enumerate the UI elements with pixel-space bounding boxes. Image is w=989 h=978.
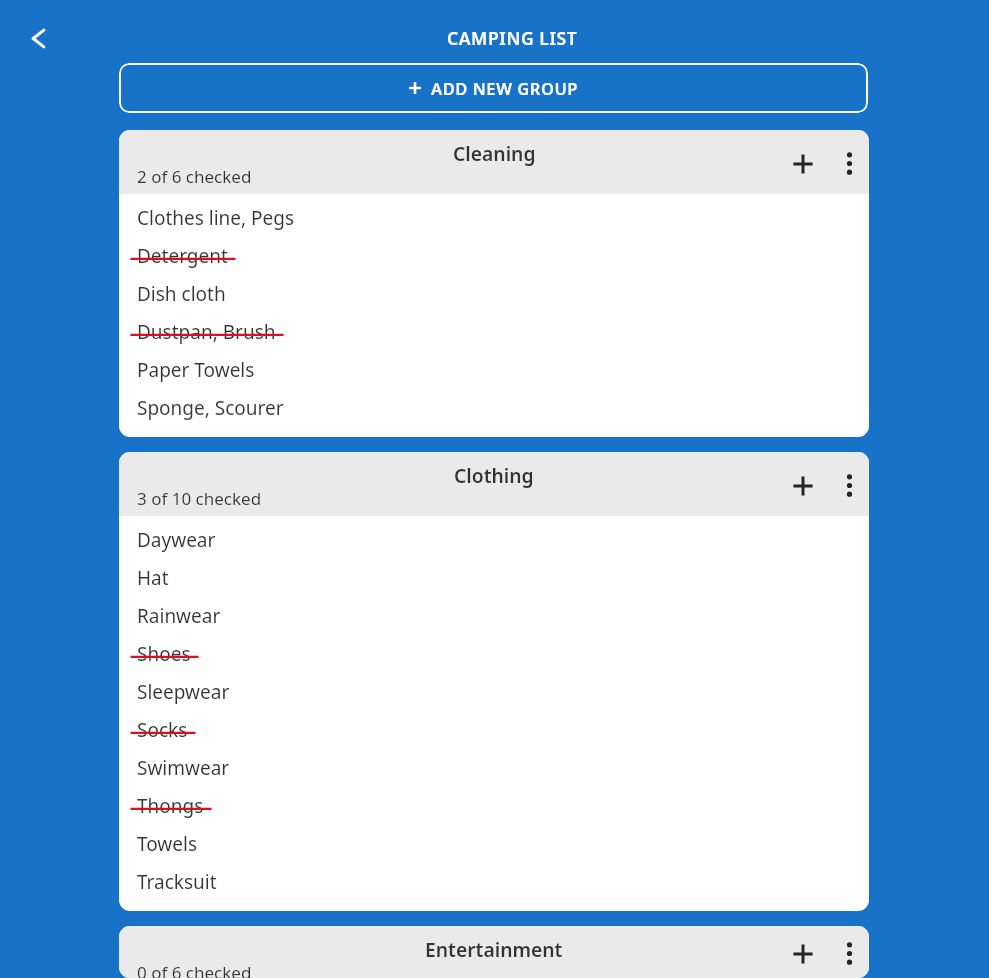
staticText: 3 of 10 checked: [137, 487, 262, 510]
staticText: Rainwear: [137, 603, 221, 629]
button[interactable]: Detergent: [119, 232, 869, 270]
staticText: Entertainment: [425, 936, 563, 962]
button[interactable]: ADD NEW GROUP: [119, 63, 868, 113]
staticText: Dish cloth: [137, 281, 226, 307]
staticText: Thongs: [137, 793, 204, 819]
staticText: Clothes line, Pegs: [137, 205, 295, 231]
staticText: Swimwear: [137, 755, 230, 781]
button[interactable]: Thongs: [119, 782, 869, 820]
button[interactable]: More options: [830, 133, 869, 194]
button[interactable]: Shoes: [119, 630, 869, 668]
staticText: Dustpan, Brush: [137, 319, 276, 345]
button[interactable]: Rainwear: [119, 592, 869, 630]
button[interactable]: Add item: [776, 929, 830, 978]
staticText: Clothing: [454, 462, 534, 488]
staticText: Detergent: [137, 243, 228, 269]
button[interactable]: Add item: [776, 455, 830, 516]
button[interactable]: Dustpan, Brush: [119, 308, 869, 346]
staticText: Towels: [137, 831, 198, 857]
button[interactable]: Sponge, Scourer: [119, 384, 869, 422]
button[interactable]: Dish cloth: [119, 270, 869, 308]
staticText: Socks: [137, 717, 188, 743]
staticText: Hat: [137, 565, 169, 591]
button[interactable]: Daywear: [119, 516, 869, 554]
button[interactable]: Hat: [119, 554, 869, 592]
staticText: Paper Towels: [137, 357, 255, 383]
staticText: CAMPING LIST: [447, 26, 578, 50]
staticText: 0 of 6 checked: [137, 961, 252, 978]
staticText: ADD NEW GROUP: [431, 77, 579, 99]
button[interactable]: Paper Towels: [119, 346, 869, 384]
staticText: Daywear: [137, 527, 216, 553]
button[interactable]: Back: [16, 16, 61, 61]
button[interactable]: Towels: [119, 820, 869, 858]
button[interactable]: Sleepwear: [119, 668, 869, 706]
button[interactable]: More options: [830, 929, 869, 978]
staticText: Cleaning: [453, 140, 536, 166]
staticText: Sleepwear: [137, 679, 230, 705]
button[interactable]: Socks: [119, 706, 869, 744]
button[interactable]: Clothes line, Pegs: [119, 194, 869, 232]
staticText: Sponge, Scourer: [137, 395, 284, 421]
staticText: Tracksuit: [137, 869, 217, 895]
staticText: 2 of 6 checked: [137, 165, 252, 188]
button[interactable]: More options: [830, 455, 869, 516]
button[interactable]: Tracksuit: [119, 858, 869, 896]
button[interactable]: Add item: [776, 133, 830, 194]
button[interactable]: Swimwear: [119, 744, 869, 782]
staticText: Shoes: [137, 641, 191, 667]
